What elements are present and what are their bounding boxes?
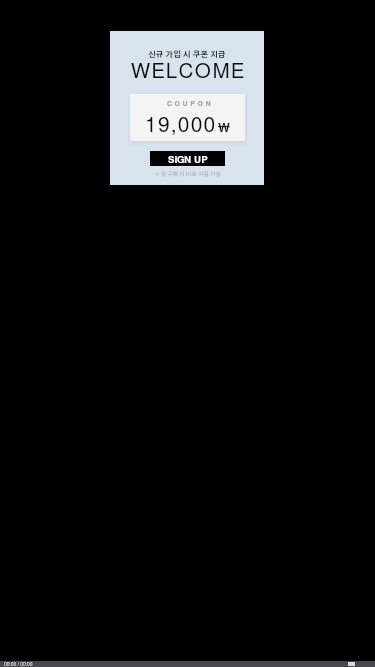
button[interactable]: 신규 가입 시 쿠폰 지급 (110, 31, 264, 185)
staticText: COUPON (167, 100, 214, 107)
staticText: * 첫 구매 시 바로 사용 가능 (156, 172, 222, 178)
staticText: 신규 가입 시 쿠폰 지급 (148, 51, 226, 59)
staticText: 00:00 / 00:00 (4, 662, 33, 667)
staticText: WELCOME (131, 62, 246, 82)
button[interactable]: SIGN UP (150, 151, 225, 166)
staticText: 19,000 (145, 115, 217, 136)
staticText: SIGN UP (168, 155, 208, 164)
staticText: ₩ (218, 122, 230, 135)
